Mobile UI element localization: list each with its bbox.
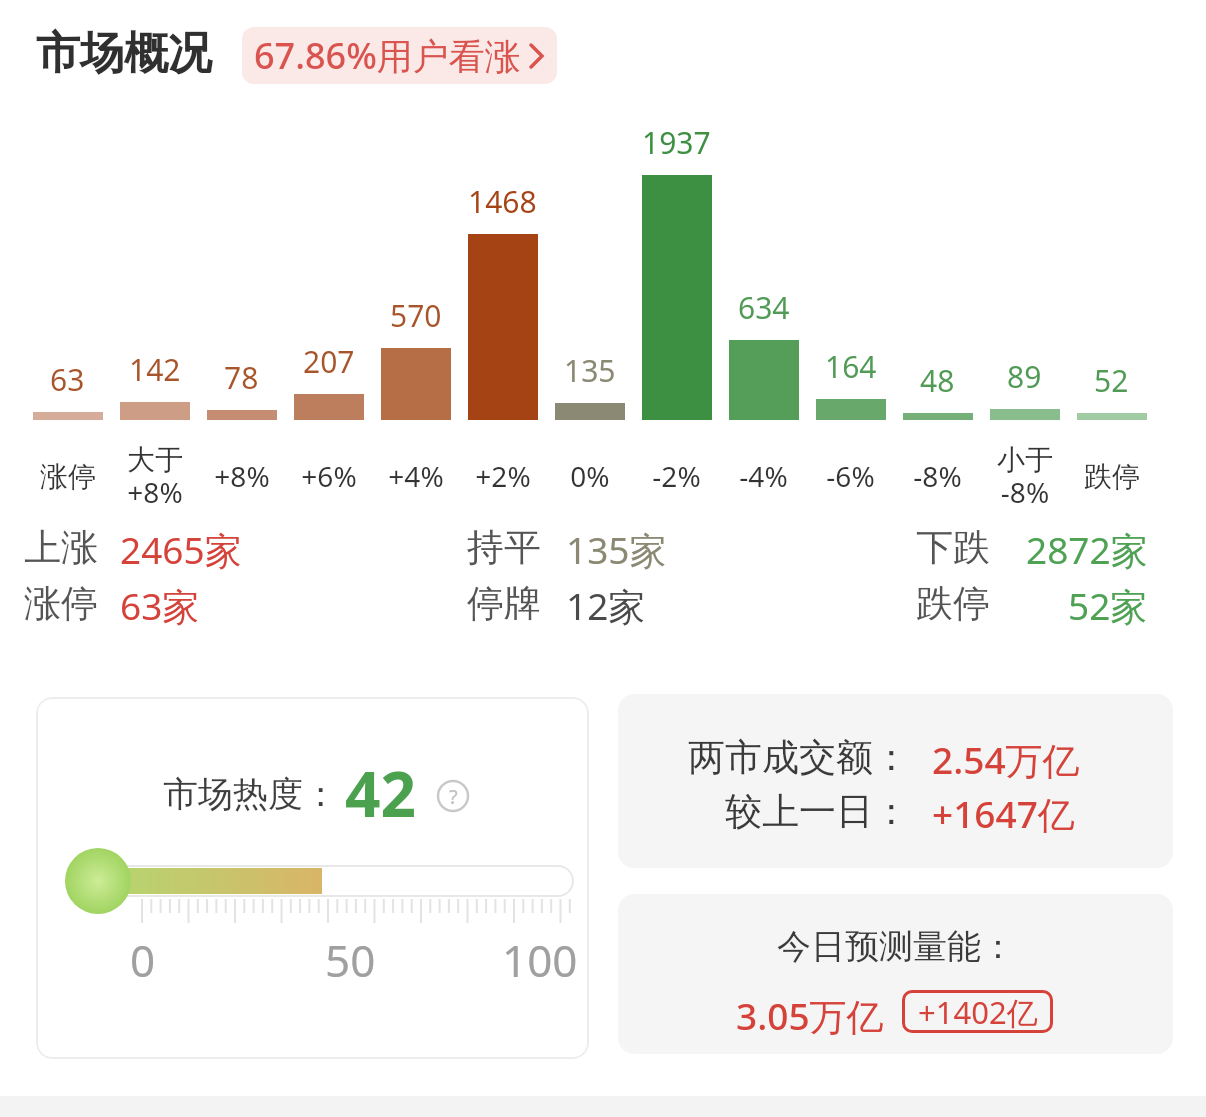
staticText: 634 — [738, 287, 790, 328]
button[interactable]: 67.86%用户看涨 — [242, 27, 557, 84]
staticText: 164 — [825, 346, 877, 387]
staticText: 50 — [325, 930, 376, 990]
staticText: -6% — [826, 457, 875, 495]
staticText: 2465家 — [120, 524, 242, 575]
staticText: 两市成交额： — [688, 734, 910, 781]
staticText: 570 — [390, 295, 442, 336]
staticText: 100 — [502, 930, 578, 990]
staticText: -8% — [913, 457, 962, 495]
staticText: 市场热度： — [163, 772, 338, 816]
staticText: 48 — [920, 360, 955, 401]
button[interactable]: ? — [436, 779, 470, 813]
staticText: 涨停 — [24, 580, 98, 627]
staticText: 较上一日： — [725, 788, 910, 835]
staticText: +1402亿 — [918, 991, 1038, 1033]
staticText: 0% — [570, 457, 610, 495]
staticText: 12家 — [566, 580, 646, 631]
staticText: 跌停 — [916, 580, 990, 627]
staticText: 67.86%用户看涨 — [254, 31, 521, 80]
staticText: 3.05万亿 — [736, 990, 884, 1041]
staticText: +8% — [214, 457, 270, 495]
staticText: -4% — [739, 457, 788, 495]
button[interactable]: 今日预测量能： — [618, 894, 1173, 1054]
staticText: 持平 — [467, 524, 541, 571]
button[interactable]: 两市成交额： — [618, 694, 1173, 868]
staticText: +4% — [388, 457, 444, 495]
staticText: 63家 — [120, 580, 200, 631]
staticText: 52 — [1094, 360, 1129, 401]
staticText: 上涨 — [24, 524, 98, 571]
staticText: 1937 — [642, 122, 711, 163]
staticText: 207 — [303, 341, 355, 382]
staticText: 52家 — [1068, 580, 1148, 631]
staticText: 2.54万亿 — [932, 734, 1080, 785]
staticText: 跌停 — [1084, 459, 1140, 494]
staticText: 市场概况 — [36, 26, 212, 81]
staticText: +1647亿 — [932, 788, 1075, 839]
staticText: -2% — [652, 457, 701, 495]
staticText: 42 — [345, 751, 416, 835]
staticText: +2% — [475, 457, 531, 495]
staticText: 下跌 — [916, 524, 990, 571]
staticText: 1468 — [468, 181, 537, 222]
button[interactable]: 市场热度： — [36, 697, 589, 1059]
staticText: 78 — [224, 357, 259, 398]
staticText: 0 — [130, 930, 156, 990]
staticText: 小于 -8% — [997, 442, 1053, 511]
staticText: 135家 — [566, 524, 667, 575]
staticText: 大于 +8% — [127, 442, 183, 511]
staticText: 142 — [129, 349, 181, 390]
staticText: 63 — [50, 359, 85, 400]
staticText: 2872家 — [1026, 524, 1148, 575]
staticText: 停牌 — [467, 580, 541, 627]
staticText: 89 — [1007, 356, 1042, 397]
staticText: 今日预测量能： — [777, 925, 1015, 968]
staticText: 135 — [564, 350, 616, 391]
staticText: ? — [449, 783, 458, 810]
staticText: 涨停 — [40, 459, 96, 494]
staticText: +6% — [301, 457, 357, 495]
